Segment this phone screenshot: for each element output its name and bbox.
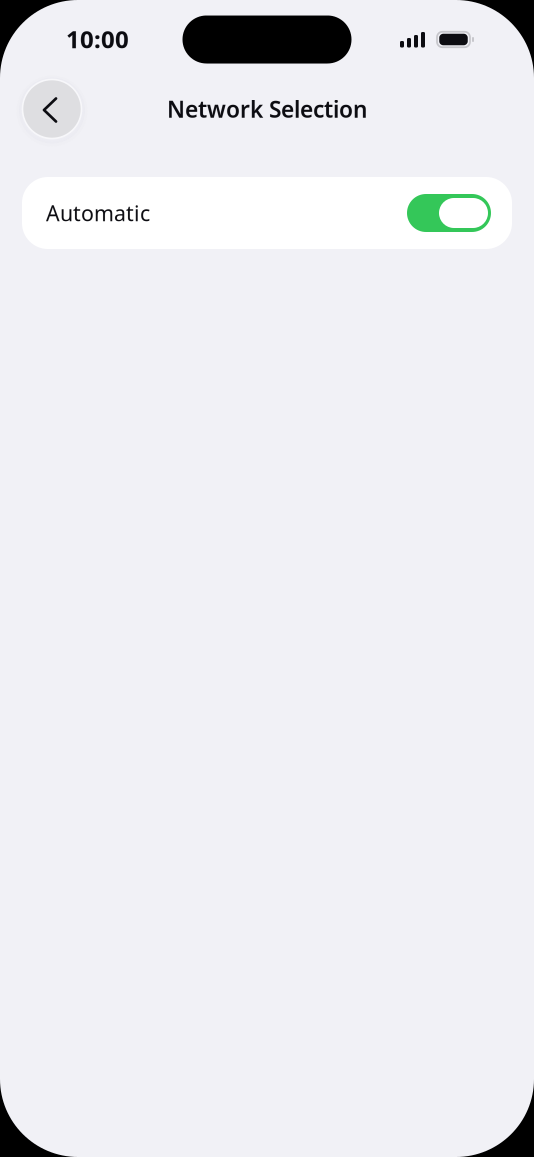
staticText: Network Selection <box>167 94 367 124</box>
staticText: 10:00 <box>66 23 129 55</box>
button[interactable]: Automatic <box>22 177 512 249</box>
staticText: Automatic <box>46 199 150 227</box>
button[interactable]: Back <box>23 80 81 138</box>
